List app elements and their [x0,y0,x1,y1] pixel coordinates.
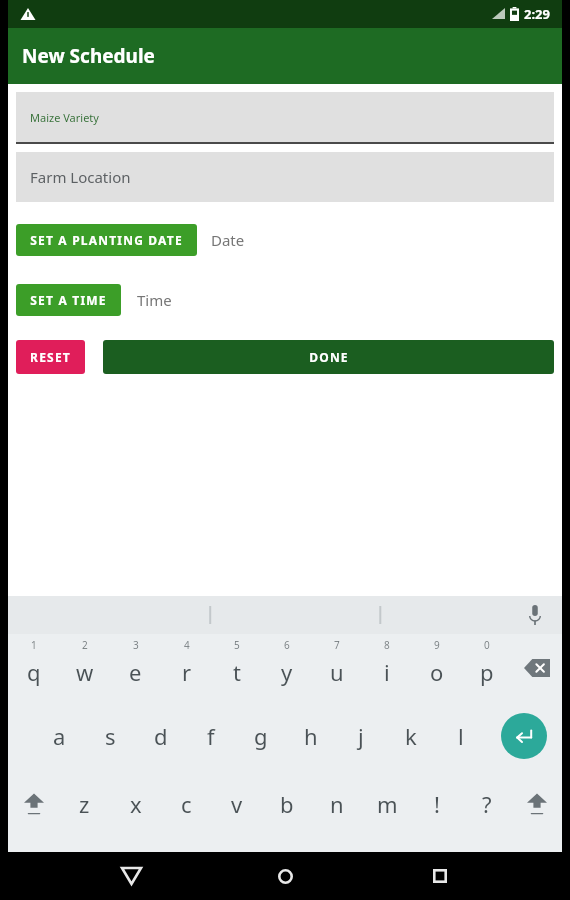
button[interactable]: Recents [416,852,464,900]
staticText: Date [211,230,245,250]
staticText: u [330,657,344,687]
button[interactable]: d [136,702,186,770]
staticText: RESET [30,349,71,365]
staticText: b [280,789,294,819]
button[interactable]: m [362,770,412,838]
button[interactable]: g [236,702,286,770]
staticText: 2 [82,638,88,652]
staticText: z [79,789,90,819]
button[interactable]: k [386,702,436,770]
staticText: 0 [484,638,490,652]
staticText: ? [482,789,492,819]
button[interactable]: 6 [262,634,312,702]
staticText: New Schedule [22,43,155,69]
staticText: l [458,721,464,751]
button[interactable]: Emoji [489,838,562,900]
staticText: 9 [434,638,440,652]
button[interactable]: Back [107,852,155,900]
staticText: 5 [234,638,240,652]
staticText: w [76,657,94,687]
button[interactable]: c [161,770,212,838]
staticText: Farm Location [30,167,131,187]
button[interactable]: . [437,838,489,900]
staticText: s [105,721,116,751]
staticText: p [480,657,494,687]
staticText: 6 [284,638,290,652]
button[interactable]: b [262,770,312,838]
button[interactable]: RESET [16,340,85,374]
staticText: y [281,657,293,687]
button[interactable]: v [212,770,262,838]
staticText: 8 [384,638,390,652]
staticText: 1 [31,638,37,652]
button[interactable]: x [110,770,161,838]
button[interactable]: 8 [362,634,412,702]
button[interactable]: 1 [8,634,59,702]
button[interactable]: Maize Variety [16,92,554,142]
button[interactable]: Backspace [512,634,562,702]
button[interactable]: SET A PLANTING DATE [16,224,197,256]
staticText: 4 [184,638,190,652]
staticText: o [430,657,444,687]
staticText: SET A PLANTING DATE [30,232,183,248]
staticText: d [154,721,168,751]
button[interactable]: DONE [103,340,554,374]
staticText: n [330,789,344,819]
button[interactable]: 2 [59,634,110,702]
button[interactable]: s [85,702,136,770]
button[interactable]: Shift [512,770,562,838]
button[interactable]: Enter [501,713,547,759]
staticText: Maize Variety [30,110,99,125]
staticText: j [358,721,364,751]
staticText: c [181,789,192,819]
staticText: ! [434,789,440,819]
button[interactable]: SET A TIME [16,284,121,316]
button[interactable]: Voice input [522,602,548,628]
button[interactable]: j [336,702,386,770]
button[interactable]: f [186,702,236,770]
button[interactable]: 3 [110,634,161,702]
button[interactable]: 4 [161,634,212,702]
staticText: 7 [334,638,340,652]
button[interactable]: ?123 [8,838,92,900]
button[interactable]: l [436,702,486,770]
staticText: g [254,721,268,751]
staticText: f [207,721,215,751]
staticText: m [377,789,398,819]
staticText: q [27,657,41,687]
button[interactable]: 5 [212,634,262,702]
button[interactable]: 9 [412,634,462,702]
staticText: a [53,721,66,751]
staticText: e [129,657,142,687]
staticText: 3 [133,638,139,652]
button[interactable]: h [286,702,336,770]
staticText: SET A TIME [30,292,107,308]
staticText: h [304,721,318,751]
staticText: i [384,657,390,687]
button[interactable]: a [34,702,85,770]
staticText: DONE [309,349,349,365]
button[interactable]: Space [144,838,437,900]
button[interactable]: Shift [8,770,59,838]
staticText: , [115,852,121,879]
button[interactable]: Farm Location [16,152,554,202]
button[interactable]: ! [412,770,462,838]
staticText: v [231,789,243,819]
staticText: 2:29 [524,5,550,23]
staticText: r [182,657,192,687]
button[interactable]: , [92,838,144,900]
button[interactable]: 0 [462,634,512,702]
button[interactable]: ? [462,770,512,838]
staticText: t [233,657,241,687]
button[interactable]: 7 [312,634,362,702]
button[interactable]: Home [261,852,309,900]
staticText: Time [137,290,172,310]
button[interactable]: z [59,770,110,838]
staticText: x [130,789,142,819]
button[interactable]: n [312,770,362,838]
staticText: k [405,721,417,751]
